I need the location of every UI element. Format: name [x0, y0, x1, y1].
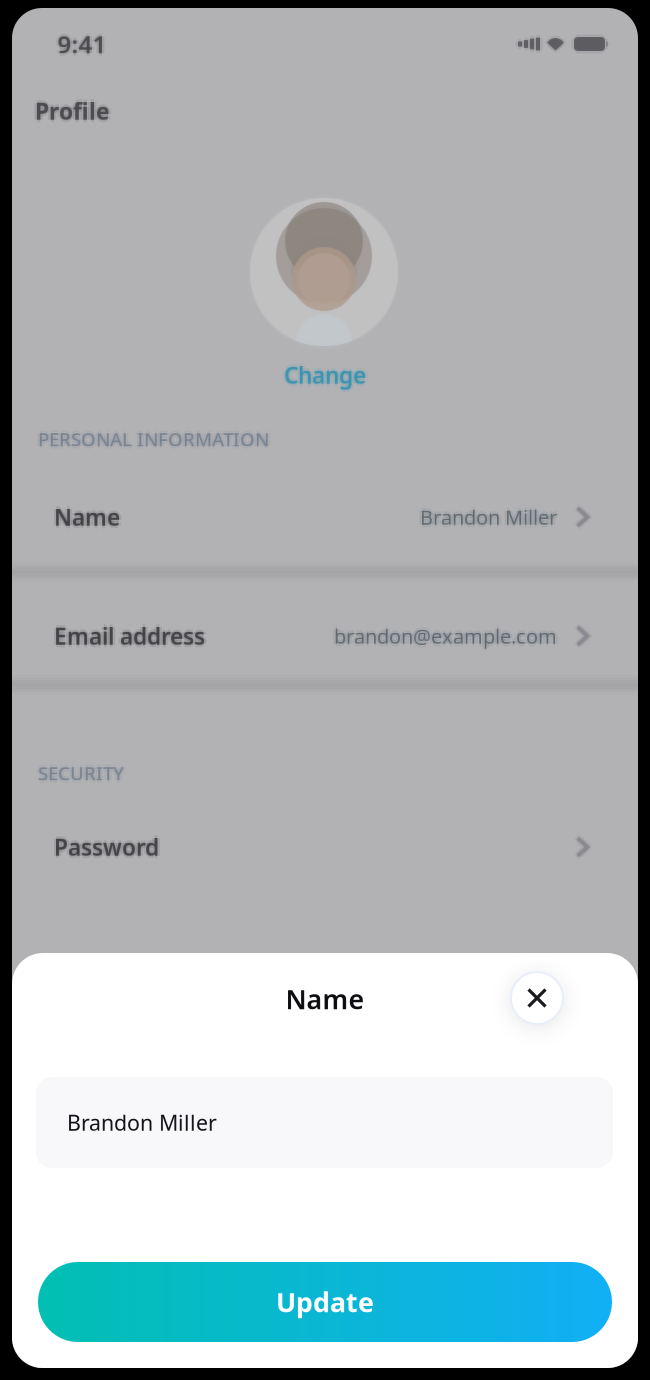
button[interactable]: Update — [38, 1262, 612, 1342]
staticText: Email address — [54, 623, 205, 653]
staticText: Name — [285, 981, 364, 1017]
staticText: SECURITY — [35, 761, 121, 785]
staticText: Email address — [54, 621, 205, 651]
staticText: SECURITY — [38, 758, 124, 783]
staticText: Profile — [32, 96, 107, 126]
staticText: SECURITY — [38, 763, 124, 788]
staticText: Name — [56, 502, 122, 532]
staticText: Change — [281, 360, 363, 390]
button[interactable]: Name — [12, 467, 638, 567]
staticText: Email address — [56, 621, 207, 651]
staticText: 9:41 — [57, 28, 106, 60]
staticText: PERSONAL INFORMATION — [40, 427, 271, 451]
button[interactable]: Close — [511, 972, 563, 1024]
staticText: Profile — [37, 96, 112, 126]
button[interactable]: Password — [12, 797, 638, 897]
staticText: SECURITY — [40, 761, 126, 785]
staticText: Profile — [35, 93, 110, 123]
staticText: Name — [54, 502, 120, 532]
staticText: brandon@example.com — [334, 625, 557, 652]
staticText: 9:41 — [60, 28, 109, 60]
staticText: brandon@example.com — [334, 620, 557, 647]
staticText: Brandon Miller — [420, 506, 557, 533]
staticText: Password — [51, 832, 156, 862]
staticText: Profile — [35, 96, 110, 126]
staticText: Email address — [51, 621, 202, 651]
staticText: 9:41 — [57, 26, 106, 57]
staticText: brandon@example.com — [331, 623, 554, 649]
staticText: Email address — [54, 618, 205, 648]
staticText: Brandon Miller — [420, 501, 557, 528]
staticText: PERSONAL INFORMATION — [38, 429, 269, 454]
staticText: PERSONAL INFORMATION — [38, 424, 269, 449]
button[interactable]: Email address — [12, 586, 638, 686]
staticText: brandon@example.com — [334, 623, 557, 649]
staticText: Brandon Miller — [422, 504, 559, 530]
staticText: SECURITY — [38, 761, 124, 785]
staticText: 9:41 — [55, 28, 104, 60]
staticText: Name — [54, 504, 120, 534]
staticText: Password — [54, 829, 159, 859]
staticText: Change — [284, 362, 366, 392]
staticText: Change — [286, 360, 368, 390]
staticText: Brandon Miller — [420, 504, 557, 530]
staticText: PERSONAL INFORMATION — [35, 427, 266, 451]
staticText: Update — [276, 1284, 374, 1320]
button[interactable]: Change — [284, 360, 366, 390]
staticText: Password — [54, 832, 159, 862]
staticText: Name — [51, 502, 117, 532]
staticText: Profile — [35, 98, 110, 128]
staticText: Password — [54, 834, 159, 864]
staticText: Change — [284, 360, 366, 390]
staticText: Change — [284, 357, 366, 387]
staticText: PERSONAL INFORMATION — [38, 427, 269, 451]
staticText: brandon@example.com — [336, 623, 559, 649]
staticText: Name — [54, 499, 120, 529]
staticText: Brandon Miller — [67, 1108, 217, 1137]
staticText: Brandon Miller — [417, 504, 554, 530]
staticText: 9:41 — [57, 31, 106, 62]
staticText: Password — [56, 832, 161, 862]
